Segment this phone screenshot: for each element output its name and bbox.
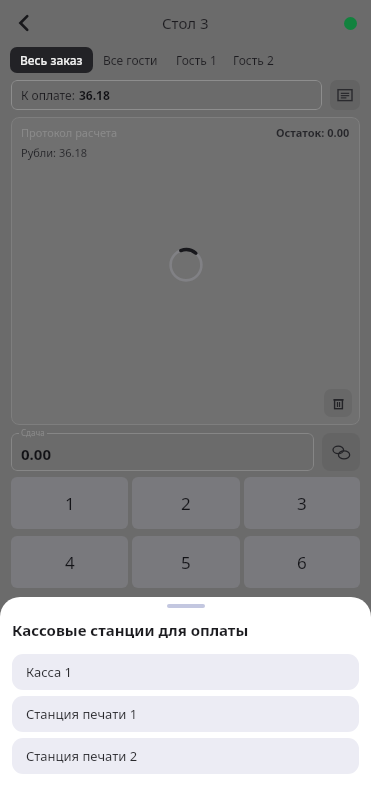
staticText: 0.00 xyxy=(21,444,51,464)
staticText: Стол 3 xyxy=(162,13,209,33)
staticText: 6 xyxy=(297,551,307,574)
button[interactable]: Станция печати 2 xyxy=(12,738,359,774)
button[interactable]: К оплате: xyxy=(11,80,322,110)
button[interactable]: Касса 1 xyxy=(12,654,359,690)
staticText: Остаток: 0.00 xyxy=(276,125,350,140)
staticText: Касса 1 xyxy=(26,663,72,681)
staticText: 2 xyxy=(181,492,191,515)
staticText: Гость 1 xyxy=(176,52,217,68)
staticText: 4 xyxy=(65,551,75,574)
staticText: Весь заказ xyxy=(20,52,83,68)
staticText: Кассовые станции для оплаты xyxy=(12,620,249,640)
button[interactable]: Гость 2 xyxy=(225,47,282,73)
button[interactable]: 1 xyxy=(11,477,128,529)
staticText: 1 xyxy=(65,492,75,515)
staticText: К оплате: xyxy=(21,87,79,103)
button[interactable]: Receipt xyxy=(330,80,360,110)
button[interactable]: Все гости xyxy=(93,47,168,73)
button[interactable]: Станция печати 1 xyxy=(12,696,359,732)
staticText: Гость 2 xyxy=(233,52,274,68)
staticText: Протокол расчета xyxy=(21,125,118,140)
button[interactable]: Back xyxy=(6,5,42,41)
button[interactable]: 6 xyxy=(244,536,360,588)
staticText: Сдача xyxy=(21,427,45,438)
staticText: 3 xyxy=(297,492,307,515)
staticText: Рубли: 36.18 xyxy=(21,145,88,160)
button[interactable] xyxy=(11,433,314,471)
button[interactable]: 3 xyxy=(244,477,360,529)
button[interactable]: Весь заказ xyxy=(10,47,93,73)
button[interactable]: Cash xyxy=(322,433,360,471)
button[interactable]: Delete xyxy=(324,389,352,417)
staticText: Станция печати 1 xyxy=(26,705,138,723)
button[interactable]: 5 xyxy=(132,536,240,588)
button[interactable]: 2 xyxy=(132,477,240,529)
staticText: Все гости xyxy=(103,52,158,68)
button[interactable]: 4 xyxy=(11,536,128,588)
staticText: 36.18 xyxy=(79,87,110,103)
staticText: 5 xyxy=(181,551,191,574)
button[interactable]: Гость 1 xyxy=(168,47,225,73)
other: Online status xyxy=(344,17,357,30)
staticText: Станция печати 2 xyxy=(26,747,138,765)
